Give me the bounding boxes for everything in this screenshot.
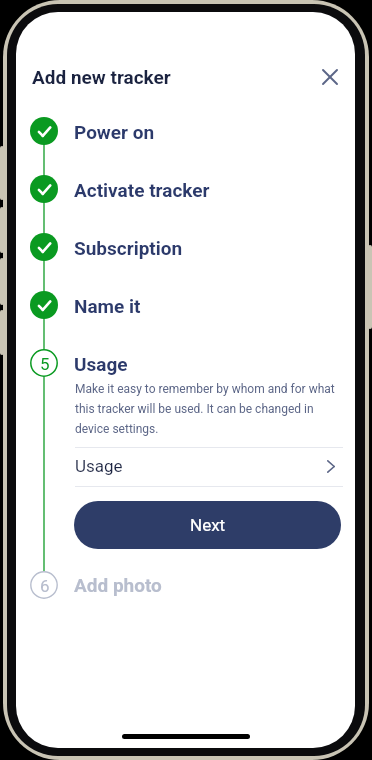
- staticText: Subscription: [74, 237, 183, 259]
- staticText: Add photo: [74, 574, 162, 596]
- staticText: Usage: [74, 353, 128, 375]
- button[interactable]: Usage: [75, 447, 335, 485]
- staticText: Next: [190, 515, 226, 535]
- staticText: 5: [40, 354, 50, 374]
- staticText: Activate tracker: [74, 179, 210, 201]
- button[interactable]: Activate tracker: [74, 179, 210, 201]
- staticText: Add new tracker: [32, 66, 171, 88]
- staticText: Make it easy to remember by whom and for…: [75, 382, 340, 436]
- button[interactable]: [30, 117, 58, 145]
- button[interactable]: Power on: [74, 121, 155, 143]
- button[interactable]: [30, 291, 58, 319]
- button[interactable]: [30, 175, 58, 203]
- button[interactable]: [30, 233, 58, 261]
- staticText: 6: [40, 576, 50, 596]
- staticText: Power on: [74, 121, 155, 143]
- button[interactable]: Subscription: [74, 237, 183, 259]
- staticText: Name it: [74, 295, 141, 317]
- button[interactable]: Next: [74, 501, 341, 549]
- staticText: Usage: [75, 456, 123, 476]
- button[interactable]: Close: [312, 59, 348, 95]
- button[interactable]: Name it: [74, 295, 141, 317]
